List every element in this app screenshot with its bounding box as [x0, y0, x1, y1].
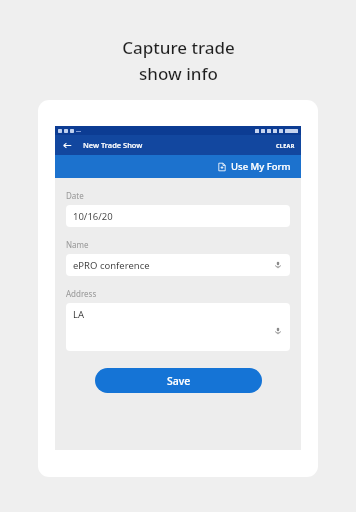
staticText: show info [139, 62, 218, 85]
button[interactable]: Save [95, 368, 262, 393]
button[interactable]: Use My Form [55, 155, 301, 178]
staticText: CLEAR [276, 142, 295, 149]
button[interactable]: Back [60, 138, 74, 152]
staticText: Save [167, 374, 191, 388]
button[interactable]: ePRO conference [66, 254, 290, 276]
button[interactable]: 10/16/20 [66, 205, 290, 227]
button[interactable]: CLEAR [270, 138, 301, 153]
staticText: Name [66, 239, 89, 250]
staticText: Use My Form [231, 160, 291, 173]
staticText: Address [66, 288, 97, 299]
button[interactable]: Voice input [273, 326, 283, 336]
staticText: Capture trade [122, 36, 235, 59]
button[interactable]: LA [66, 303, 290, 351]
staticText: LA [73, 308, 85, 321]
button[interactable]: Voice input [273, 260, 283, 270]
staticText: 10/16/20 [73, 210, 113, 223]
staticText: ePRO conference [73, 259, 150, 272]
staticText: Date [66, 190, 84, 201]
staticText: New Trade Show [83, 140, 143, 150]
